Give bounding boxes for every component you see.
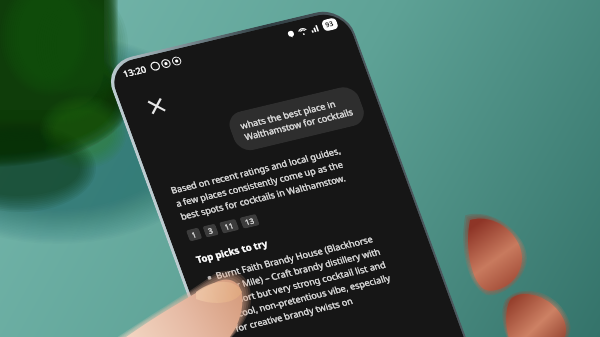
button[interactable]: 1 bbox=[182, 223, 206, 246]
button[interactable]: 11 bbox=[215, 213, 243, 240]
staticText: 13 bbox=[240, 212, 259, 230]
staticText: 1 bbox=[187, 227, 201, 242]
staticText: Top picks to try bbox=[190, 211, 274, 292]
button[interactable]: 3 bbox=[198, 219, 223, 242]
staticText: 11 bbox=[220, 217, 238, 235]
staticText: 13:20 bbox=[117, 54, 152, 88]
button[interactable]: Close bbox=[127, 78, 185, 134]
staticText: Burnt Faith Brandy House (Blackhorse Bee… bbox=[192, 174, 419, 337]
staticText: Based on recent ratings and local guides… bbox=[156, 82, 365, 284]
staticText: whats the best place in Walthamstow for … bbox=[230, 55, 363, 182]
staticText: 3 bbox=[203, 223, 218, 238]
button[interactable]: whats the best place in Walthamstow for … bbox=[212, 37, 381, 200]
staticText: 93 bbox=[321, 16, 339, 33]
button[interactable]: 13 bbox=[235, 208, 264, 235]
